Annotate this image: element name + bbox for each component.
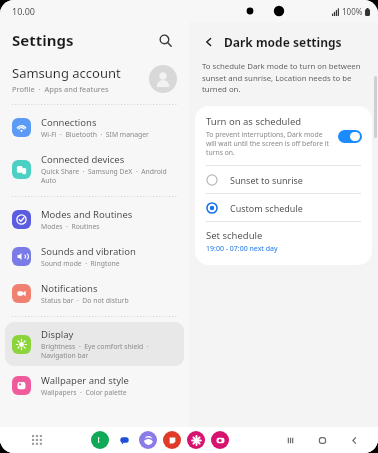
staticText: Brightness · Eye comfort shield · Naviga… bbox=[41, 342, 177, 360]
button[interactable]: Notes bbox=[163, 431, 181, 449]
button[interactable]: Search bbox=[153, 28, 177, 52]
button[interactable]: Camera bbox=[211, 431, 229, 449]
staticText: Connections bbox=[41, 116, 97, 129]
button[interactable]: Home bbox=[313, 431, 331, 449]
staticText: 19:00 - 07:00 next day bbox=[206, 244, 278, 254]
staticText: Wallpapers · Color palette bbox=[41, 388, 127, 397]
staticText: 10.00 bbox=[12, 5, 36, 17]
button[interactable]: Sunset to sunrise bbox=[195, 166, 372, 193]
staticText: 100% bbox=[342, 6, 363, 17]
button[interactable]: Phone bbox=[91, 431, 109, 449]
staticText: Wallpaper and style bbox=[41, 374, 129, 387]
staticText: Turn on as scheduled bbox=[206, 115, 302, 128]
staticText: Sounds and vibration bbox=[41, 245, 136, 258]
button[interactable]: Turn on as scheduled bbox=[195, 106, 372, 165]
button[interactable]: All apps bbox=[28, 431, 46, 449]
button[interactable]: Modes and Routines bbox=[5, 202, 184, 237]
button[interactable]: Samsung account bbox=[0, 58, 189, 100]
button[interactable]: Display bbox=[5, 322, 184, 366]
staticText: Connected devices bbox=[41, 153, 125, 166]
staticText: Modes · Routines bbox=[41, 222, 100, 231]
staticText: To prevent interruptions, Dark mode will… bbox=[206, 130, 330, 157]
button[interactable]: Recents bbox=[281, 431, 299, 449]
staticText: Dark mode settings bbox=[224, 34, 342, 50]
staticText: Custom schedule bbox=[230, 202, 303, 214]
button[interactable]: Internet bbox=[139, 431, 157, 449]
button[interactable]: Messages bbox=[115, 431, 133, 449]
button[interactable]: Sounds and vibration bbox=[5, 239, 184, 274]
staticText: Notifications bbox=[41, 282, 98, 295]
button[interactable]: Back bbox=[199, 32, 219, 52]
staticText: Set schedule bbox=[206, 229, 263, 242]
staticText: Wi-Fi · Bluetooth · SIM manager bbox=[41, 130, 149, 139]
staticText: Quick Share · Samsung DeX · Android Auto bbox=[41, 167, 177, 185]
button[interactable]: Connected devices bbox=[5, 147, 184, 191]
staticText: Samsung account bbox=[12, 64, 121, 82]
button[interactable]: Custom schedule bbox=[195, 194, 372, 221]
button[interactable]: Connections bbox=[5, 110, 184, 145]
staticText: Settings bbox=[12, 30, 74, 50]
staticText: Display bbox=[41, 328, 74, 341]
button[interactable]: Gallery bbox=[187, 431, 205, 449]
staticText: To schedule Dark mode to turn on between… bbox=[202, 61, 365, 94]
button[interactable]: Set schedule bbox=[195, 222, 372, 265]
staticText: Sunset to sunrise bbox=[230, 174, 303, 186]
button[interactable]: Notifications bbox=[5, 276, 184, 311]
button[interactable]: Back bbox=[345, 431, 363, 449]
staticText: Sound mode · Ringtone bbox=[41, 259, 120, 268]
staticText: Status bar · Do not disturb bbox=[41, 296, 129, 305]
staticText: Profile · Apps and features bbox=[12, 84, 109, 94]
button[interactable]: Wallpaper and style bbox=[5, 368, 184, 403]
staticText: Modes and Routines bbox=[41, 208, 133, 221]
